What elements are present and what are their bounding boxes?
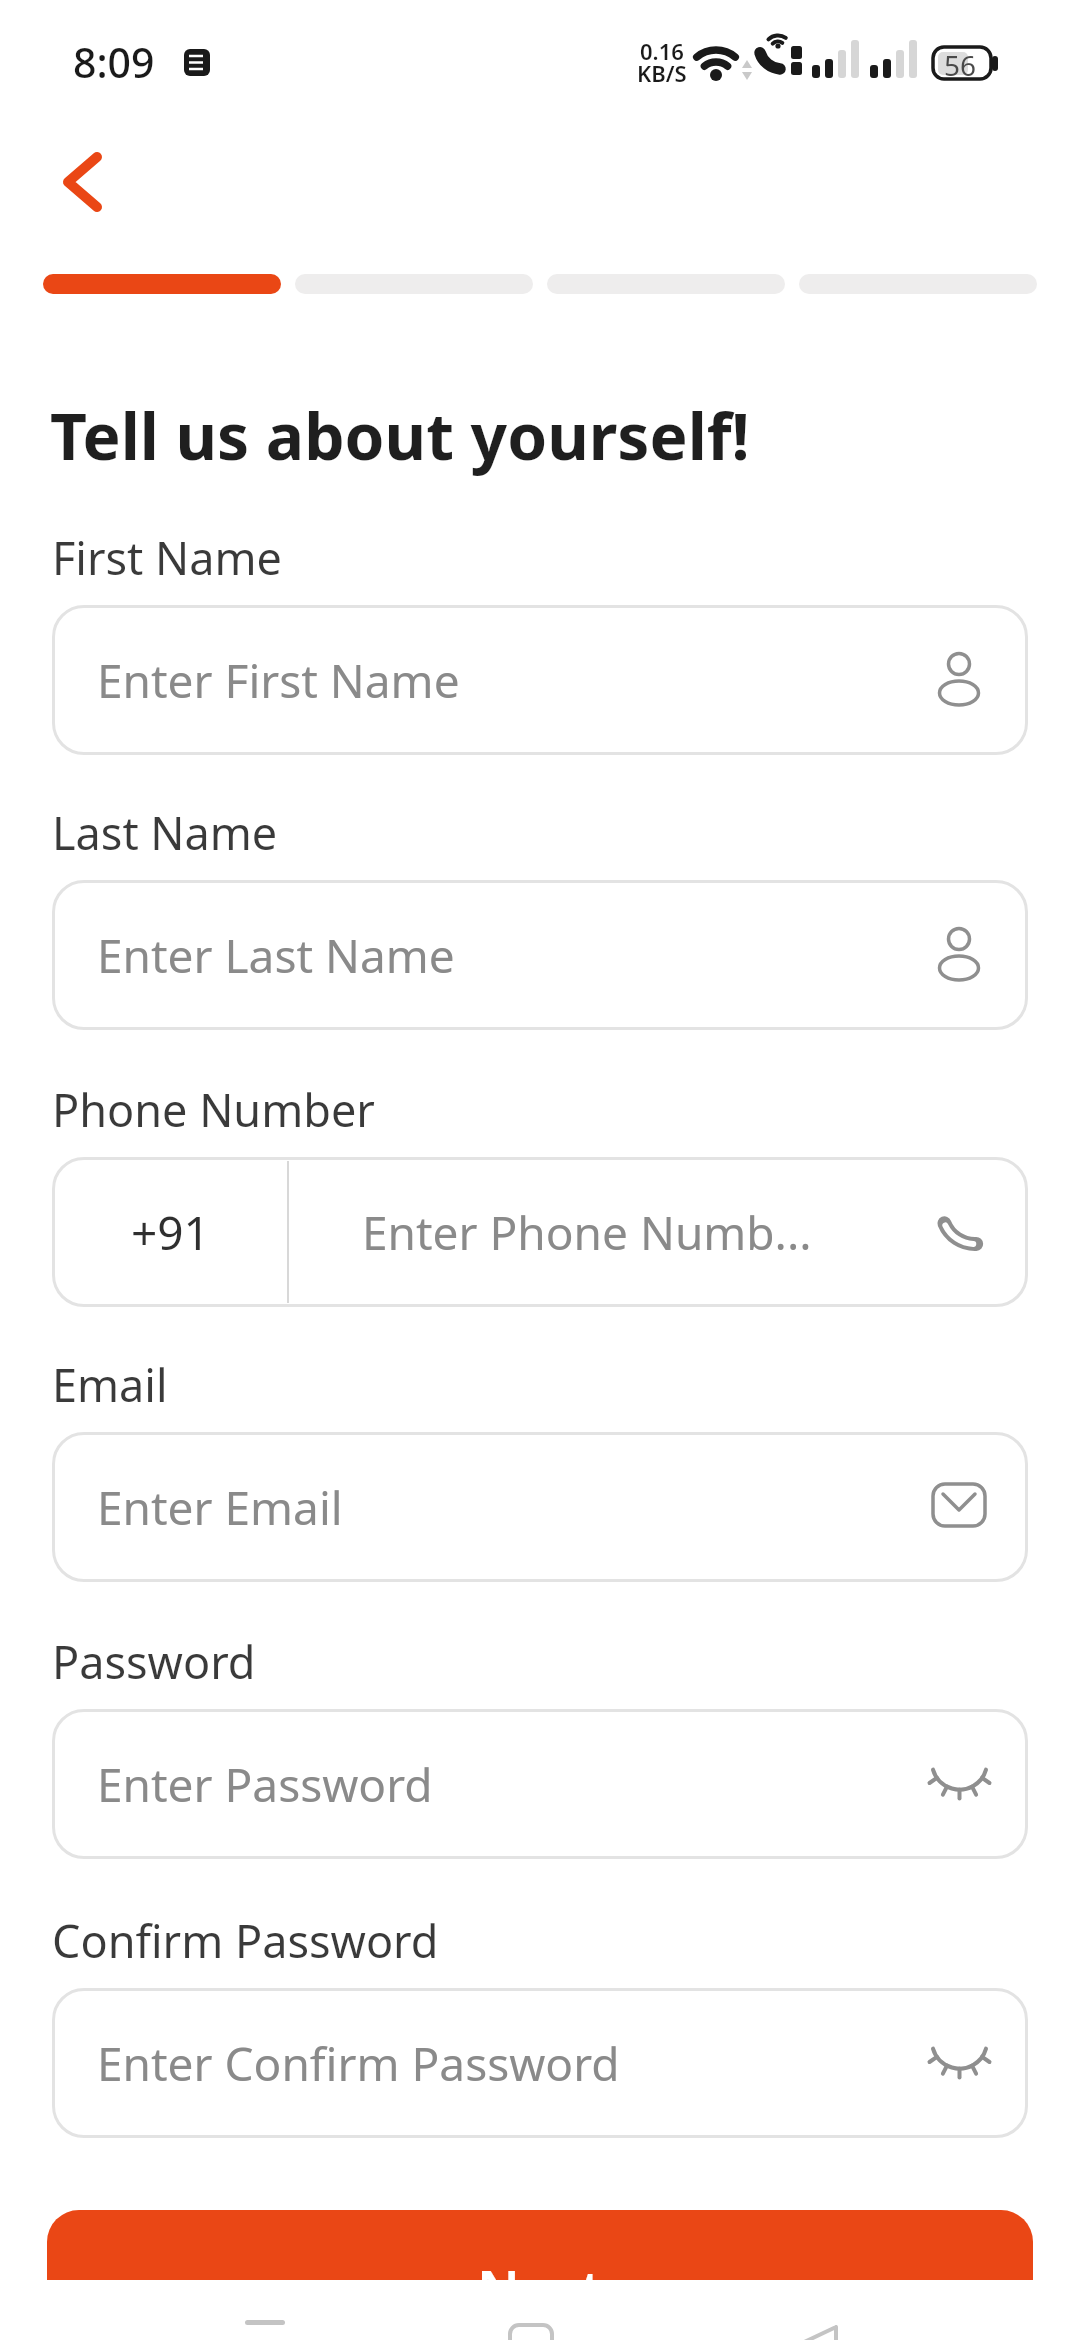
staticText: Enter Confirm Password (97, 2032, 620, 2095)
staticText: Enter Last Name (97, 924, 455, 987)
staticText: Tell us about yourself! (50, 392, 750, 479)
staticText: 0.16 (640, 36, 684, 66)
staticText: Email (52, 1354, 168, 1415)
staticText: 8:09 (73, 34, 155, 90)
staticText: Enter Password (97, 1753, 433, 1816)
staticText: 56 (944, 46, 977, 84)
button[interactable] (52, 880, 1028, 1030)
staticText: Enter First Name (97, 649, 460, 712)
button[interactable] (44, 138, 134, 228)
button[interactable] (52, 1157, 1028, 1307)
staticText: Enter Phone Numb... (362, 1201, 812, 1264)
staticText: Confirm Password (52, 1910, 439, 1971)
button[interactable] (52, 1709, 1028, 1859)
staticText: Next (477, 2252, 603, 2326)
staticText: Enter Email (97, 1476, 343, 1539)
staticText: +91 (131, 1201, 210, 1264)
staticText: Phone Number (52, 1079, 375, 1140)
button[interactable] (52, 1988, 1028, 2138)
button[interactable] (52, 605, 1028, 755)
staticText: KB/S (637, 58, 687, 88)
button[interactable] (52, 1432, 1028, 1582)
staticText: First Name (52, 527, 282, 588)
staticText: Last Name (52, 802, 278, 863)
button[interactable]: Next (47, 2210, 1033, 2340)
staticText: Password (52, 1631, 256, 1692)
